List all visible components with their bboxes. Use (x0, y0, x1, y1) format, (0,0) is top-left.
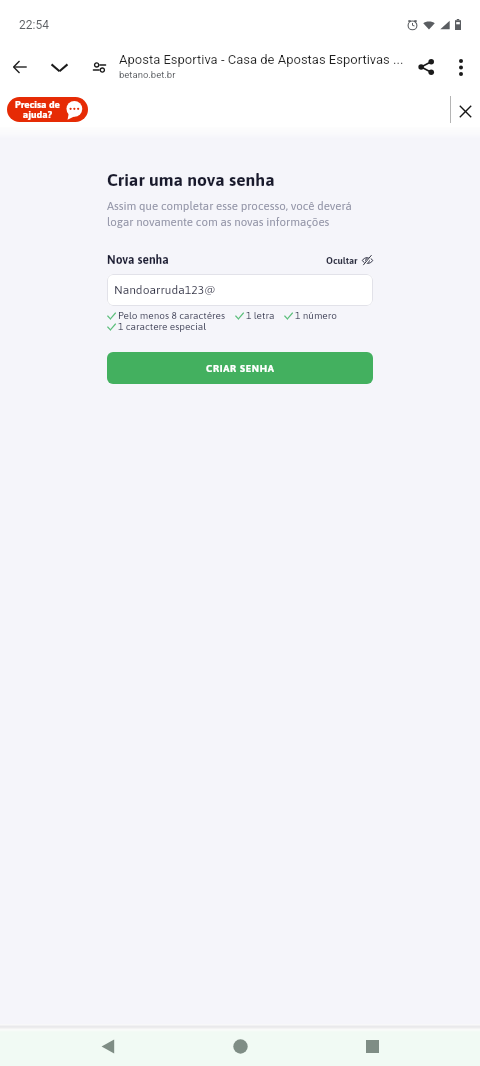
button[interactable]: Back (84, 1029, 132, 1063)
staticText: Aposta Esportiva - Casa de Apostas Espor… (119, 52, 404, 67)
staticText: CRIAR SENHA (206, 363, 275, 374)
staticText: Ocultar (326, 255, 358, 266)
button[interactable]: CRIAR SENHA (107, 352, 373, 384)
staticText: 1 número (295, 310, 337, 321)
button[interactable]: Show more tabs (42, 42, 76, 92)
staticText: Pelo menos 8 caractéres (118, 310, 226, 321)
button[interactable]: Aposta Esportiva - Casa de Apostas Espor… (119, 41, 407, 91)
staticText: Nandoarruda123@ (114, 283, 216, 297)
button[interactable]: Recent apps (348, 1029, 396, 1063)
staticText: 1 letra (246, 310, 275, 321)
button[interactable]: Close (451, 94, 479, 129)
staticText: Assim que completar esse processo, você … (107, 199, 373, 228)
staticText: Nova senha (107, 253, 169, 267)
staticText: Precisa de ajuda? (15, 99, 60, 120)
button[interactable]: Ocultar (326, 255, 373, 266)
button[interactable]: Home (216, 1029, 264, 1063)
button[interactable]: Back (0, 42, 40, 92)
staticText: betano.bet.br (119, 69, 176, 80)
button[interactable]: Nandoarruda123@ (107, 274, 373, 306)
button[interactable]: Share (407, 42, 445, 92)
staticText: 22:54 (19, 18, 49, 32)
staticText: Criar uma nova senha (107, 170, 275, 190)
button[interactable]: More options (443, 42, 478, 92)
button[interactable]: Site settings (80, 42, 118, 92)
staticText: 1 caractere especial (118, 321, 207, 332)
button[interactable]: Precisa de ajuda? (7, 97, 88, 122)
